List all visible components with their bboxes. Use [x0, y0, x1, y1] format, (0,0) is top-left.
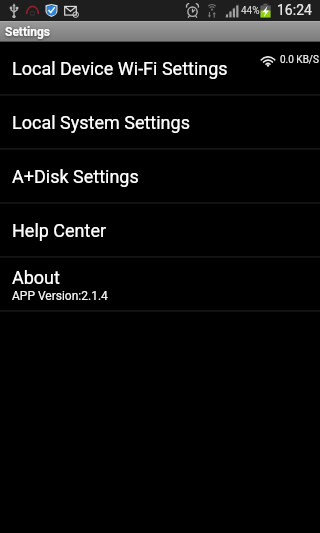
button[interactable]: Local System Settings: [0, 96, 320, 148]
staticText: 44%: [241, 5, 260, 17]
staticText: 0.0 KB/S: [280, 54, 319, 66]
staticText: A+Disk Settings: [12, 166, 139, 187]
staticText: About: [12, 267, 60, 288]
staticText: Local Device Wi-Fi Settings: [12, 58, 228, 79]
staticText: Help Center: [12, 220, 107, 241]
button[interactable]: Help Center: [0, 204, 320, 256]
button[interactable]: About: [0, 258, 320, 310]
staticText: Settings: [5, 25, 50, 39]
button[interactable]: Local Device Wi-Fi Settings: [0, 42, 320, 94]
staticText: 16:24: [277, 2, 312, 18]
staticText: APP Version:2.1.4: [12, 289, 108, 303]
button[interactable]: A+Disk Settings: [0, 150, 320, 202]
staticText: Local System Settings: [12, 112, 190, 133]
